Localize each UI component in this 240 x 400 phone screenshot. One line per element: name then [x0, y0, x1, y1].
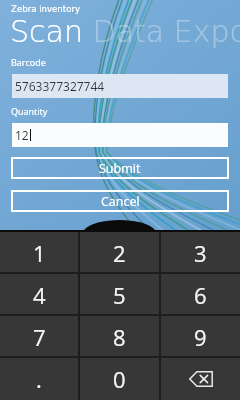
staticText: 5: [113, 280, 126, 310]
button[interactable]: 3: [161, 232, 240, 274]
staticText: Data Expo: [83, 14, 240, 49]
staticText: 12: [15, 127, 29, 143]
staticText: 9: [194, 322, 207, 352]
staticText: Zebra inventory: [11, 4, 81, 14]
staticText: 6: [194, 280, 207, 310]
staticText: 2: [113, 238, 126, 268]
staticText: Submit: [99, 160, 141, 177]
staticText: 8: [113, 322, 126, 352]
staticText: Barcode: [11, 56, 46, 68]
staticText: Quantity: [11, 105, 48, 117]
button[interactable]: .: [0, 358, 78, 400]
button[interactable]: Cancel: [12, 191, 228, 211]
staticText: 3: [194, 238, 207, 268]
staticText: 0: [113, 364, 126, 394]
button[interactable]: 1: [0, 232, 78, 274]
staticText: Cancel: [101, 193, 140, 210]
button[interactable]: 0: [80, 358, 159, 400]
staticText: 1: [33, 238, 46, 268]
button[interactable]: 4: [0, 274, 78, 316]
button[interactable]: 2: [80, 232, 159, 274]
button[interactable]: Submit: [12, 158, 228, 178]
button[interactable]: 12: [12, 123, 228, 147]
button[interactable]: 6: [161, 274, 240, 316]
button[interactable]: 5763377327744: [12, 74, 228, 98]
staticText: 5763377327744: [15, 78, 105, 94]
staticText: 4: [33, 280, 46, 310]
staticText: 7: [33, 322, 46, 352]
button[interactable]: 7: [0, 316, 78, 358]
button[interactable]: 8: [80, 316, 159, 358]
button[interactable]: 9: [161, 316, 240, 358]
staticText: .: [36, 364, 42, 394]
staticText: Scan: [10, 14, 83, 49]
button[interactable]: Backspace: [161, 358, 240, 400]
button[interactable]: 5: [80, 274, 159, 316]
